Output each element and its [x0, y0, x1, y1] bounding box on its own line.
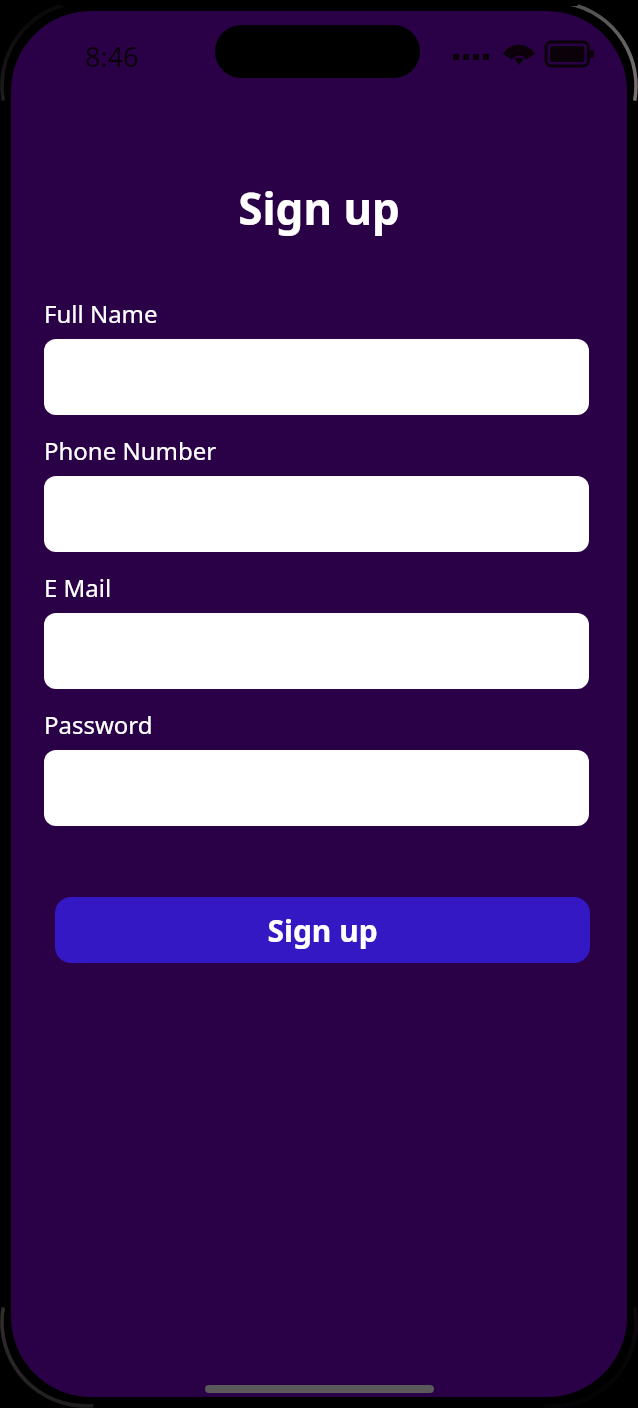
- staticText: Sign up: [267, 910, 378, 951]
- button[interactable]: E Mail: [44, 613, 589, 689]
- staticText: Password: [44, 708, 153, 741]
- staticText: Full Name: [44, 297, 158, 330]
- button[interactable]: Full Name: [44, 339, 589, 415]
- button[interactable]: Sign up: [55, 897, 590, 963]
- staticText: Sign up: [0, 178, 638, 238]
- staticText: Phone Number: [44, 434, 217, 467]
- button[interactable]: Phone Number: [44, 476, 589, 552]
- staticText: E Mail: [44, 571, 112, 604]
- staticText: 8:46: [85, 38, 139, 75]
- button[interactable]: Password: [44, 750, 589, 826]
